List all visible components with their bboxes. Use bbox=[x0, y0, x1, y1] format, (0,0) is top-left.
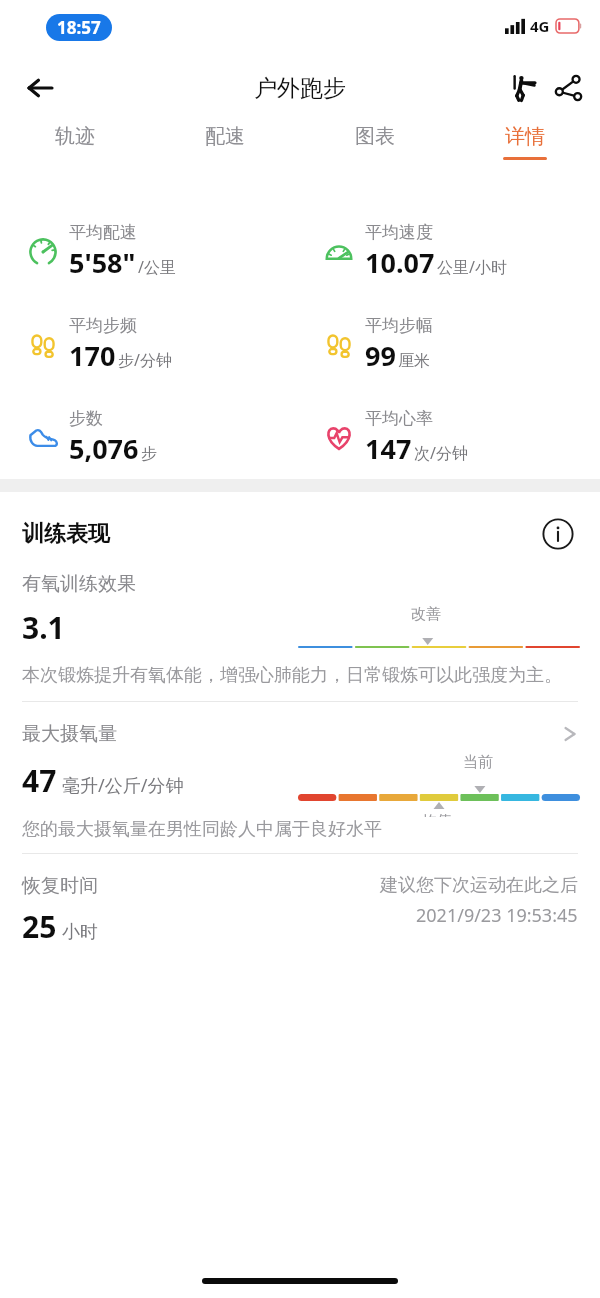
staticText: 47 bbox=[22, 760, 57, 801]
staticText: 步/分钟 bbox=[118, 349, 172, 371]
staticText: 有氧训练效果 bbox=[22, 572, 136, 596]
staticText: 次/分钟 bbox=[414, 442, 468, 464]
staticText: 公里/小时 bbox=[437, 256, 507, 278]
button[interactable]: 配速 bbox=[150, 120, 300, 178]
staticText: 平均步频 bbox=[69, 315, 137, 336]
staticText: 4G bbox=[530, 16, 550, 36]
staticText: 当前 bbox=[463, 753, 493, 772]
staticText: 改善 bbox=[411, 605, 441, 624]
staticText: 99 bbox=[365, 337, 396, 374]
button[interactable]: Run type bbox=[502, 66, 546, 110]
staticText: 毫升/公斤/分钟 bbox=[62, 773, 184, 798]
button[interactable]: Back bbox=[16, 64, 64, 112]
staticText: 建议您下次运动在此之后 bbox=[380, 874, 578, 897]
button[interactable]: 图表 bbox=[300, 120, 450, 178]
staticText: 5,076 bbox=[69, 430, 139, 467]
button[interactable]: 轨迹 bbox=[0, 120, 150, 178]
button[interactable]: Share bbox=[546, 66, 590, 110]
staticText: 您的最大摄氧量在男性同龄人中属于良好水平 bbox=[22, 818, 382, 841]
staticText: 最大摄氧量 bbox=[22, 722, 117, 746]
staticText: 步数 bbox=[69, 408, 103, 429]
staticText: 平均配速 bbox=[69, 222, 137, 243]
staticText: 平均心率 bbox=[365, 408, 433, 429]
staticText: 18:57 bbox=[57, 16, 101, 39]
staticText: 轨迹 bbox=[55, 124, 95, 149]
staticText: 147 bbox=[365, 430, 412, 467]
staticText: 5'58" bbox=[69, 244, 136, 281]
staticText: 配速 bbox=[205, 124, 245, 149]
button[interactable]: 最大摄氧量 bbox=[0, 722, 600, 746]
staticText: 小时 bbox=[62, 921, 98, 944]
staticText: 平均步幅 bbox=[365, 315, 433, 336]
button[interactable]: 详情 bbox=[450, 120, 600, 178]
staticText: /公里 bbox=[138, 256, 176, 278]
button[interactable]: Info bbox=[538, 514, 578, 554]
staticText: 步 bbox=[141, 444, 157, 464]
staticText: 本次锻炼提升有氧体能，增强心肺能力，日常锻炼可以此强度为主。 bbox=[22, 664, 562, 687]
staticText: 10.07 bbox=[365, 244, 435, 281]
staticText: 训练表现 bbox=[22, 520, 110, 548]
staticText: 均值 bbox=[422, 812, 452, 817]
staticText: 170 bbox=[69, 337, 116, 374]
staticText: 2021/9/23 19:53:45 bbox=[416, 903, 578, 928]
staticText: 3.1 bbox=[22, 607, 65, 648]
staticText: 25 bbox=[22, 906, 57, 947]
staticText: 户外跑步 bbox=[254, 74, 346, 103]
staticText: 平均速度 bbox=[365, 222, 433, 243]
staticText: 详情 bbox=[505, 124, 545, 149]
staticText: 图表 bbox=[355, 124, 395, 149]
staticText: 恢复时间 bbox=[22, 874, 98, 898]
staticText: 厘米 bbox=[398, 351, 430, 371]
